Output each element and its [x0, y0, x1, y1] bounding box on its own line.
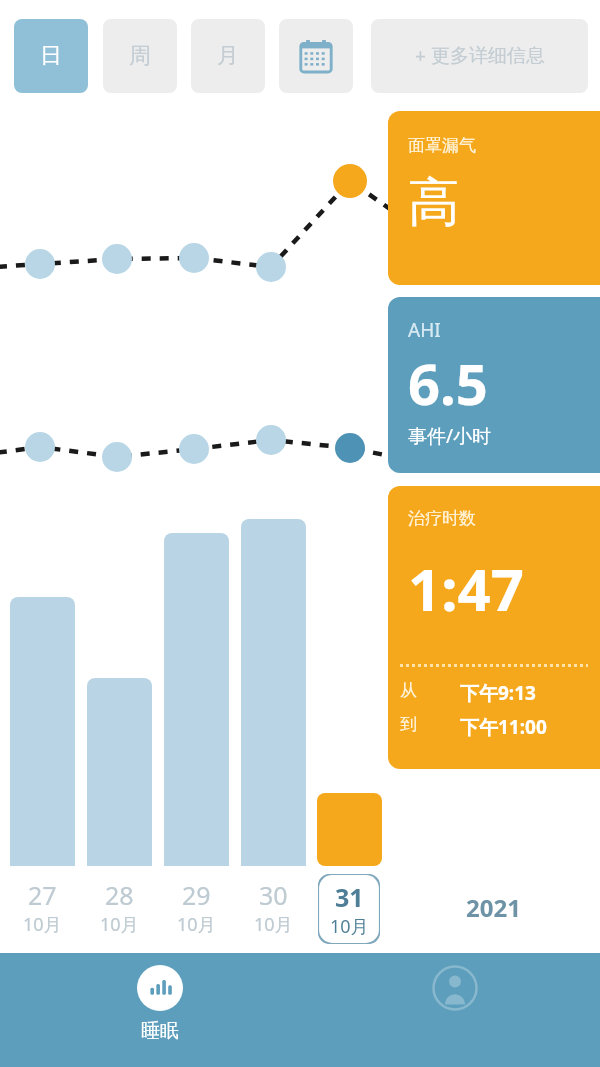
staticText: 月 [217, 42, 239, 70]
staticText: 下午11:00 [460, 714, 547, 740]
staticText: 面罩漏气 [408, 135, 476, 156]
button[interactable]: 治疗时数 [388, 486, 600, 769]
button[interactable]: Calendar [279, 19, 353, 93]
staticText: 睡眠 [141, 1019, 179, 1043]
staticText: + [415, 43, 431, 69]
staticText: 6.5 [408, 345, 488, 421]
staticText: 治疗时数 [408, 508, 476, 529]
staticText: 28 [105, 878, 134, 912]
staticText: 10月 [330, 914, 369, 939]
button[interactable]: 31 [318, 874, 380, 944]
staticText: 高 [408, 170, 460, 236]
button[interactable]: 30 [241, 876, 306, 938]
staticText: 10月 [100, 912, 139, 937]
button[interactable]: 月 [191, 19, 265, 93]
button[interactable]: AHI [388, 297, 600, 473]
button[interactable] [87, 678, 152, 866]
staticText: 31 [335, 880, 364, 914]
staticText: 30 [259, 878, 288, 912]
staticText: 2021 [466, 891, 521, 924]
staticText: 到 [400, 714, 417, 735]
staticText: 从 [400, 680, 417, 701]
button[interactable]: 27 [10, 876, 75, 938]
button[interactable]: 29 [164, 876, 229, 938]
staticText: 日 [40, 42, 62, 70]
button[interactable]: 28 [87, 876, 152, 938]
button[interactable]: Profile [400, 953, 510, 1067]
button[interactable]: 日 [14, 19, 88, 93]
staticText: 10月 [177, 912, 216, 937]
button[interactable]: 睡眠 [100, 953, 220, 1067]
staticText: 更多详细信息 [431, 44, 545, 68]
staticText: 10月 [23, 912, 62, 937]
staticText: 1:47 [408, 549, 524, 628]
button[interactable]: 周 [103, 19, 177, 93]
button[interactable] [317, 793, 382, 866]
staticText: 27 [28, 878, 57, 912]
staticText: 周 [129, 42, 151, 70]
staticText: 事件/小时 [408, 423, 492, 449]
staticText: 10月 [254, 912, 293, 937]
button[interactable]: 面罩漏气 [388, 111, 600, 285]
staticText: 下午9:13 [460, 680, 536, 706]
button[interactable]: + [371, 19, 588, 93]
staticText: AHI [408, 317, 441, 343]
staticText: 29 [182, 878, 211, 912]
